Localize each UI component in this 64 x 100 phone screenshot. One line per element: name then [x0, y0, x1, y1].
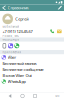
- staticText: мобильный: [2, 25, 19, 28]
- button[interactable]: WhatsApp: [14, 42, 20, 49]
- button[interactable]: Back: [1, 5, 7, 11]
- button[interactable]: Viber: [7, 42, 14, 49]
- staticText: Справочник: [8, 5, 29, 10]
- button[interactable]: Viber: [0, 54, 64, 60]
- button[interactable]: Бесплатный звонок: [0, 60, 64, 66]
- staticText: мессенджеры: [2, 38, 19, 41]
- staticText: Сергей: [15, 16, 28, 21]
- staticText: Вызов Viber Out: [2, 73, 31, 78]
- staticText: Бесплатный звонок: [2, 61, 36, 66]
- staticText: Viber: [7, 55, 16, 60]
- button[interactable]: мобильный: [0, 25, 64, 37]
- button[interactable]: Mobile: [1, 42, 7, 49]
- button[interactable]: Recents: [31, 92, 39, 99]
- button[interactable]: Home: [18, 92, 26, 99]
- staticText: +7 (911) 123-45-67: [2, 29, 32, 34]
- button[interactable]: Back: [6, 92, 14, 99]
- button[interactable]: Бесплатное сообщение: [0, 66, 64, 72]
- button[interactable]: Edit: [57, 5, 63, 11]
- staticText: Бесплатное сообщение: [2, 67, 43, 72]
- staticText: приложения: [2, 50, 21, 54]
- staticText: Россия, МТС: [2, 34, 19, 38]
- staticText: WhatsApp: [7, 79, 25, 84]
- button[interactable]: WhatsApp: [0, 78, 64, 85]
- button[interactable]: Вызов Viber Out: [0, 72, 64, 78]
- staticText: SIM: [55, 94, 59, 98]
